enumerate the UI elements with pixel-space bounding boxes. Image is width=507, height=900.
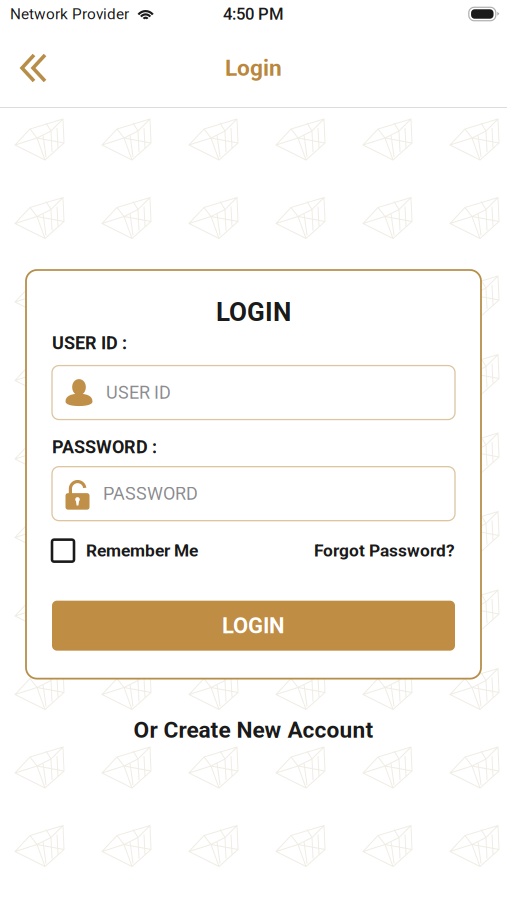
staticText: PASSWORD : bbox=[52, 437, 157, 458]
button[interactable]: LOGIN bbox=[52, 601, 455, 651]
staticText: LOGIN bbox=[222, 613, 285, 639]
button[interactable]: Forgot Password? bbox=[314, 540, 455, 561]
staticText: Forgot Password? bbox=[314, 540, 455, 561]
button[interactable]: Remember Me bbox=[52, 540, 198, 562]
staticText: PASSWORD bbox=[103, 483, 198, 504]
button[interactable]: Or Create New Account bbox=[133, 717, 373, 743]
staticText: Remember Me bbox=[86, 540, 198, 561]
staticText: 4:50 PM bbox=[223, 4, 284, 24]
staticText: Login bbox=[225, 55, 282, 81]
staticText: USER ID : bbox=[52, 332, 127, 354]
staticText: Network Provider bbox=[10, 5, 129, 23]
staticText: LOGIN bbox=[216, 297, 291, 327]
staticText: Or Create New Account bbox=[133, 717, 373, 743]
button[interactable]: Back bbox=[0, 39, 61, 97]
staticText: USER ID bbox=[106, 382, 171, 403]
